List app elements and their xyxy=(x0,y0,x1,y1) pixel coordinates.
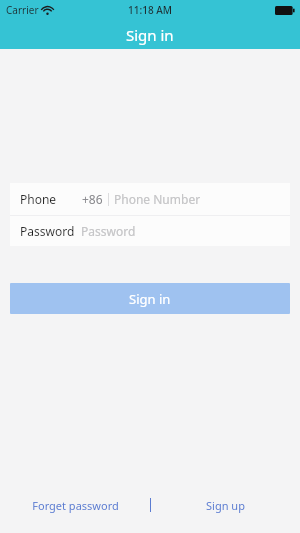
staticText: Password xyxy=(81,223,136,239)
staticText: 11:18 AM xyxy=(128,3,172,17)
button[interactable]: Phone xyxy=(10,183,290,215)
staticText: Sign in xyxy=(129,290,171,308)
other: Battery full xyxy=(275,6,295,15)
button[interactable]: Sign in xyxy=(10,283,290,314)
button[interactable]: Forget password xyxy=(0,493,150,517)
staticText: Phone Number xyxy=(114,191,201,207)
staticText: +86 xyxy=(82,191,103,207)
staticText: Sign in xyxy=(126,25,174,45)
button[interactable]: Sign up xyxy=(151,493,300,517)
staticText: Phone xyxy=(20,191,57,207)
other: Wi-Fi signal xyxy=(42,6,53,15)
staticText: Forget password xyxy=(32,498,119,513)
staticText: Password xyxy=(20,223,75,239)
staticText: Carrier xyxy=(6,3,39,17)
button[interactable]: Password xyxy=(10,216,290,246)
staticText: Sign up xyxy=(206,498,245,513)
